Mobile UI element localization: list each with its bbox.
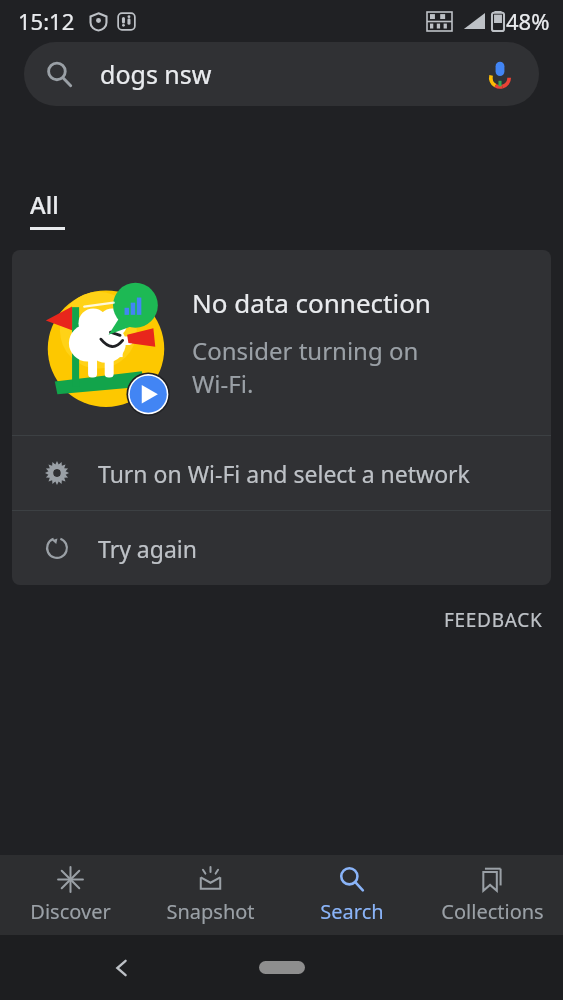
button[interactable]: Snapshot [140, 855, 281, 935]
staticText: 15:12 [18, 6, 75, 36]
staticText: All [30, 188, 59, 221]
staticText: Discover [30, 898, 111, 925]
staticText: dogs nsw [100, 57, 212, 91]
button[interactable]: Search [281, 855, 422, 935]
staticText: Turn on Wi-Fi and select a network [98, 458, 470, 489]
button[interactable]: Turn on Wi-Fi and select a network [12, 436, 551, 510]
staticText: Snapshot [166, 898, 255, 925]
button[interactable]: Voice search [483, 57, 517, 91]
staticText: 48% [506, 6, 550, 36]
button[interactable]: Back [104, 950, 140, 986]
button[interactable]: Home [259, 961, 305, 974]
staticText: FEEDBACK [444, 607, 543, 633]
button[interactable]: All [30, 188, 65, 230]
button[interactable]: Discover [0, 855, 140, 935]
button[interactable]: dogs nsw [24, 42, 539, 106]
staticText: Search [320, 898, 384, 925]
button[interactable]: Try again [12, 511, 551, 585]
button[interactable]: FEEDBACK [424, 601, 563, 639]
staticText: Consider turning on Wi-Fi. [192, 334, 419, 400]
staticText: No data connection [192, 285, 431, 320]
staticText: Try again [98, 533, 197, 564]
staticText: Collections [441, 898, 544, 925]
button[interactable]: Collections [422, 855, 563, 935]
